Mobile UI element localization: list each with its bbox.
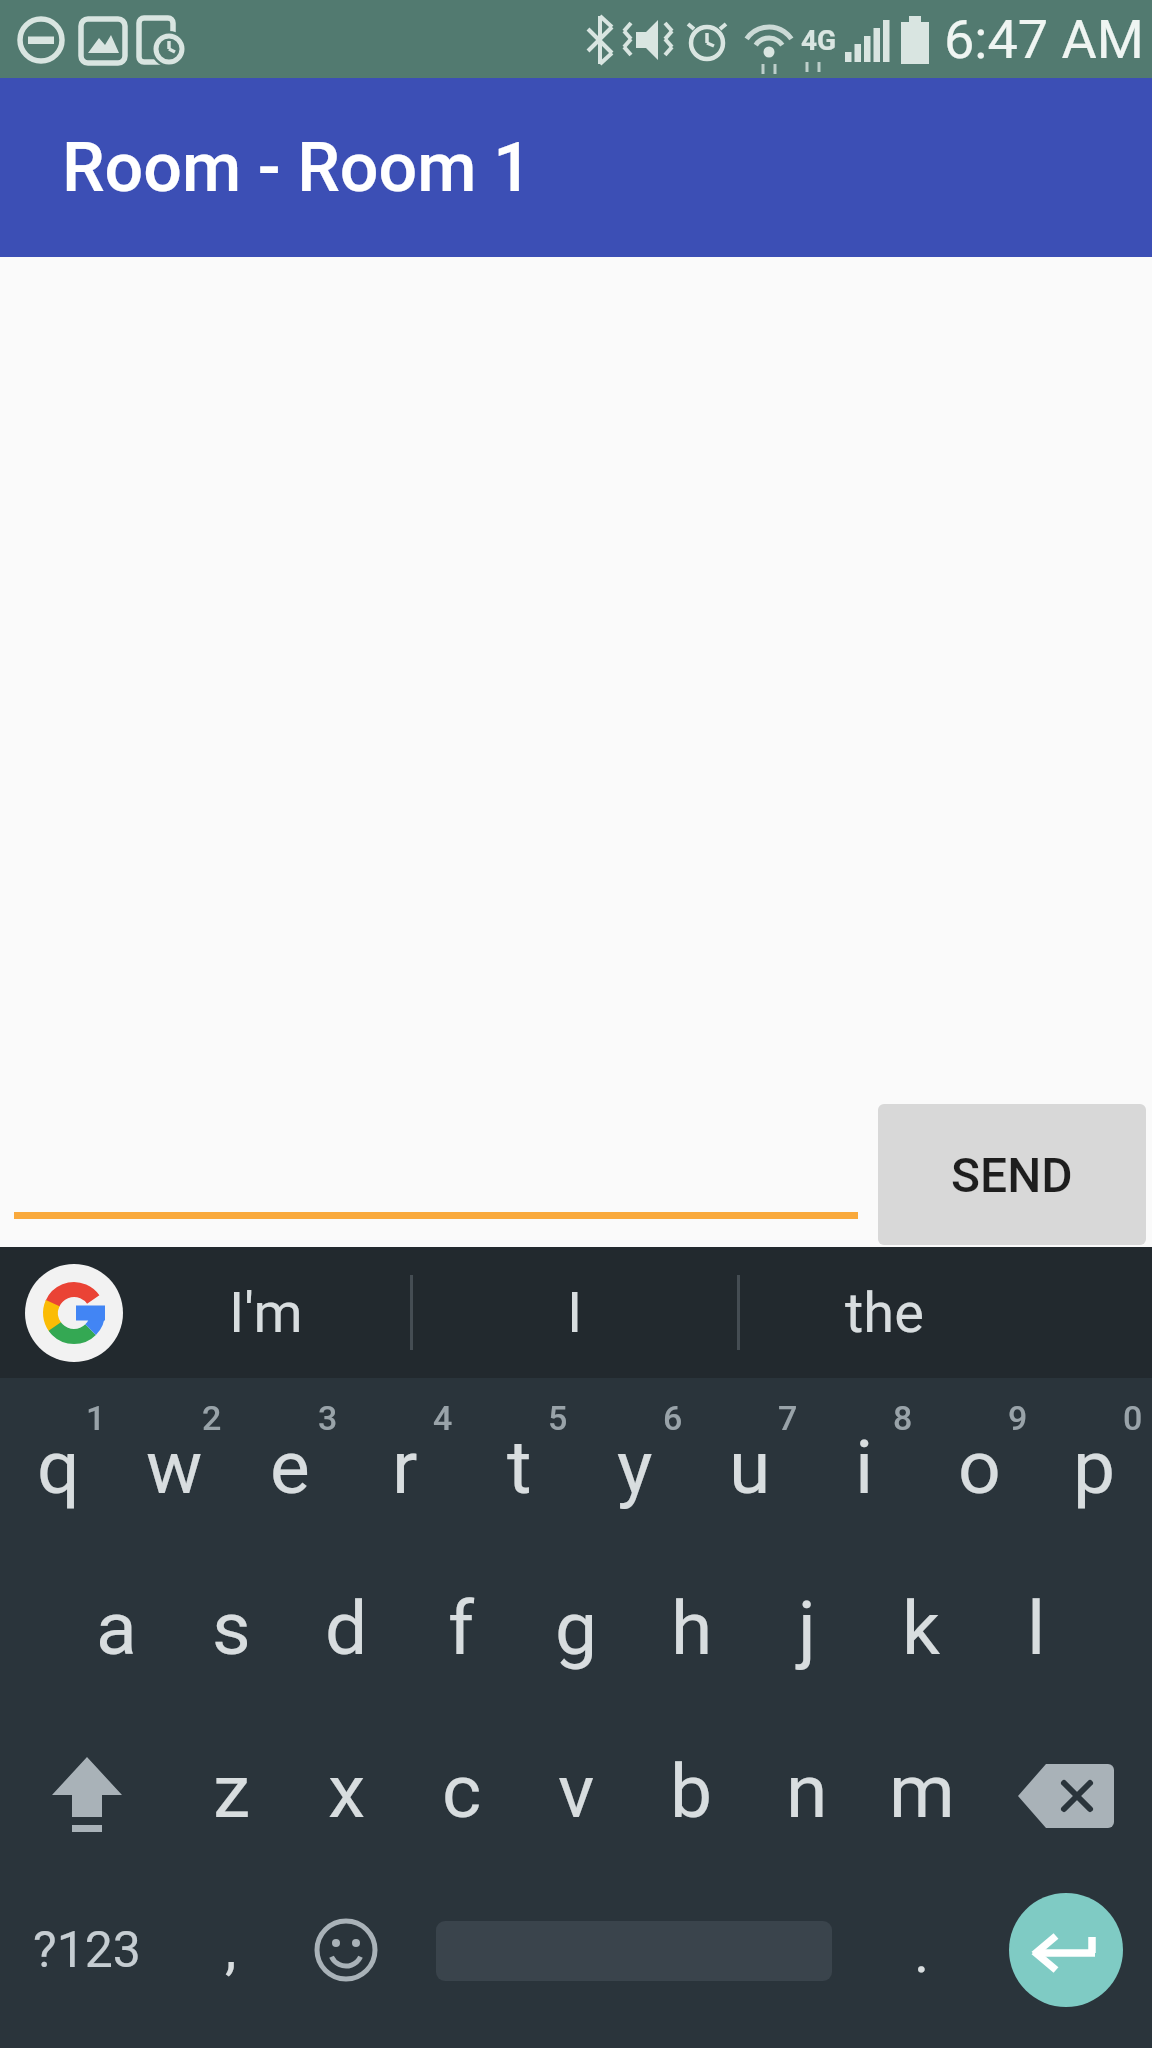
staticText: 6 [663,1398,683,1438]
button[interactable]: the [738,1247,1030,1378]
button[interactable]: . [864,1880,979,2048]
button[interactable] [1009,1893,1123,2007]
button[interactable] [0,1712,174,1880]
button[interactable]: I [411,1247,738,1378]
button[interactable]: 8 [807,1378,922,1545]
button[interactable]: 3 [232,1378,347,1545]
button[interactable]: 2 [116,1378,232,1545]
button[interactable]: 5 [462,1378,577,1545]
button[interactable]: b [634,1712,749,1880]
staticText: t [507,1423,532,1511]
button[interactable]: x [289,1712,404,1880]
button[interactable]: z [174,1712,289,1880]
staticText: 9 [1008,1398,1028,1438]
button[interactable]: h [634,1545,749,1712]
button[interactable]: d [289,1545,404,1712]
staticText: 6:47 AM [944,8,1144,71]
staticText: the [845,1280,924,1346]
button[interactable]: v [519,1712,634,1880]
button[interactable]: 4 [347,1378,462,1545]
staticText: y [617,1423,653,1511]
button[interactable]: , [173,1880,288,2048]
staticText: o [958,1423,1001,1511]
staticText: I'm [229,1280,303,1346]
staticText: 2 [202,1398,222,1438]
staticText: r [392,1423,418,1511]
staticText: p [1073,1423,1116,1511]
staticText: x [328,1747,366,1835]
staticText: l [1027,1584,1046,1672]
staticText: g [555,1584,598,1672]
staticText: z [213,1747,251,1835]
staticText: 0 [1123,1398,1143,1438]
staticText: 3 [318,1398,338,1438]
staticText: e [270,1423,310,1511]
staticText: b [670,1747,713,1835]
button[interactable]: c [404,1712,519,1880]
staticText: 4G [801,24,837,57]
button[interactable]: f [404,1545,519,1712]
staticText: w [146,1423,203,1511]
button[interactable]: s [174,1545,289,1712]
button[interactable]: 9 [922,1378,1037,1545]
staticText: ?123 [33,1921,141,1980]
button[interactable]: 7 [692,1378,807,1545]
staticText: , [225,1914,237,1982]
button[interactable]: 0 [1037,1378,1152,1545]
button[interactable]: 1 [0,1378,116,1545]
staticText: u [729,1423,771,1511]
staticText: i [855,1423,874,1511]
staticText: k [902,1584,941,1672]
staticText: q [37,1423,80,1511]
staticText: h [671,1584,713,1672]
button[interactable]: j [749,1545,864,1712]
button[interactable]: ?123 [0,1880,173,2048]
button[interactable]: k [864,1545,979,1712]
staticText: I [567,1280,583,1346]
staticText: 7 [778,1398,798,1438]
button[interactable]: m [864,1712,979,1880]
button[interactable]: I'm [120,1247,411,1378]
staticText: f [448,1584,475,1672]
staticText: 5 [548,1398,568,1438]
staticText: m [889,1747,955,1835]
button[interactable] [25,1264,123,1362]
button[interactable]: n [749,1712,864,1880]
staticText: n [786,1747,828,1835]
staticText: . [914,1918,930,1986]
button[interactable] [288,1880,403,2048]
button[interactable] [979,1712,1152,1880]
staticText: s [212,1584,251,1672]
button[interactable] [979,1880,1152,2048]
staticText: a [96,1584,137,1672]
button[interactable]: 6 [577,1378,692,1545]
button[interactable]: g [519,1545,634,1712]
staticText: 4 [433,1398,453,1438]
button[interactable]: a [59,1545,174,1712]
staticText: 8 [893,1398,913,1438]
staticText: v [558,1747,595,1835]
button[interactable]: SEND [878,1104,1146,1245]
staticText: 1 [86,1398,106,1438]
button[interactable] [403,1880,864,2048]
staticText: SEND [951,1147,1073,1203]
staticText: c [442,1747,482,1835]
staticText: Room - Room 1 [62,128,532,208]
staticText: j [798,1584,816,1672]
button[interactable]: l [979,1545,1094,1712]
staticText: d [325,1584,368,1672]
